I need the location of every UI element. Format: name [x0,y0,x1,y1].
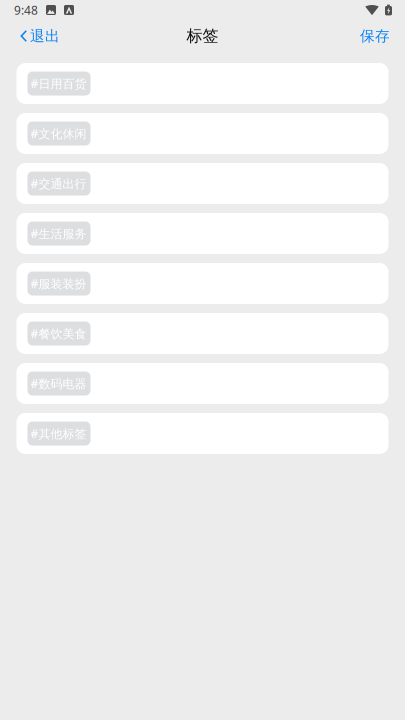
staticText: #交通出行 [30,175,86,191]
button[interactable]: #日用百货 [16,63,388,104]
button[interactable]: #其他标签 [16,413,388,454]
staticText: #生活服务 [30,225,86,241]
button[interactable]: 退出 [0,22,72,50]
staticText: #文化休闲 [30,125,86,141]
staticText: #服装装扮 [30,275,86,291]
button[interactable]: #服装装扮 [16,263,388,304]
button[interactable]: #餐饮美食 [16,313,388,354]
staticText: 保存 [360,27,390,45]
staticText: #日用百货 [30,75,86,91]
button[interactable]: 保存 [348,22,405,50]
button[interactable]: #生活服务 [16,213,388,254]
staticText: 9:48 [14,2,38,18]
button[interactable]: #文化休闲 [16,113,388,154]
staticText: #其他标签 [30,425,86,441]
staticText: #餐饮美食 [30,325,86,341]
button[interactable]: #数码电器 [16,363,388,404]
staticText: 标签 [186,26,218,46]
staticText: #数码电器 [30,375,86,391]
button[interactable]: #交通出行 [16,163,388,204]
staticText: 退出 [30,27,60,45]
